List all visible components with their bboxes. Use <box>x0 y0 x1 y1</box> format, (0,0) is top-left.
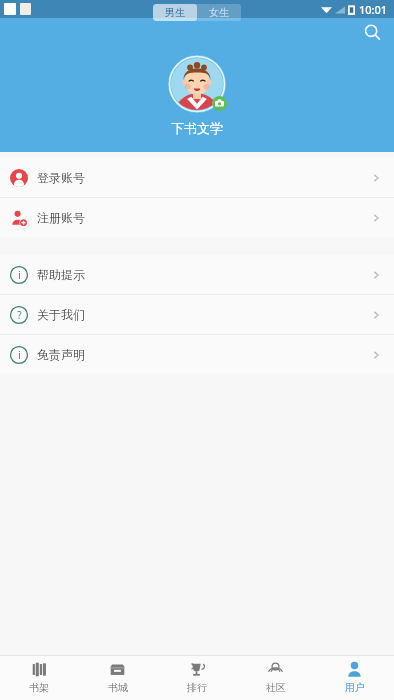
button[interactable]: 社区 <box>236 655 315 700</box>
button[interactable]: 书架 <box>0 655 78 700</box>
staticText: 10:01 <box>359 2 388 17</box>
staticText: 男生 <box>165 6 185 19</box>
button[interactable]: 注册账号 <box>0 198 394 237</box>
staticText: 关于我们 <box>37 307 85 322</box>
staticText: 下书文学 <box>171 120 223 136</box>
staticText: 帮助提示 <box>37 267 85 282</box>
button[interactable]: ? <box>0 295 394 334</box>
button[interactable]: i <box>0 335 394 374</box>
button[interactable]: Change avatar <box>212 96 227 111</box>
button[interactable]: 排行 <box>157 655 236 700</box>
staticText: 书城 <box>108 681 128 694</box>
staticText: 注册账号 <box>37 210 85 225</box>
button[interactable]: 用户 <box>315 655 394 700</box>
staticText: 用户 <box>345 681 365 694</box>
staticText: i <box>18 348 21 362</box>
button[interactable]: 书城 <box>78 655 157 700</box>
button[interactable]: Search <box>358 18 386 46</box>
staticText: 登录账号 <box>37 170 85 185</box>
staticText: 免责声明 <box>37 347 85 362</box>
staticText: i <box>18 268 21 282</box>
button[interactable]: 女生 <box>197 4 241 21</box>
staticText: 书架 <box>29 681 49 694</box>
staticText: 排行 <box>187 681 207 694</box>
button[interactable]: i <box>0 255 394 294</box>
button[interactable]: 男生 <box>153 4 197 21</box>
button[interactable]: 登录账号 <box>0 158 394 197</box>
staticText: 社区 <box>266 681 286 694</box>
staticText: 女生 <box>209 6 229 19</box>
staticText: ? <box>17 308 22 322</box>
